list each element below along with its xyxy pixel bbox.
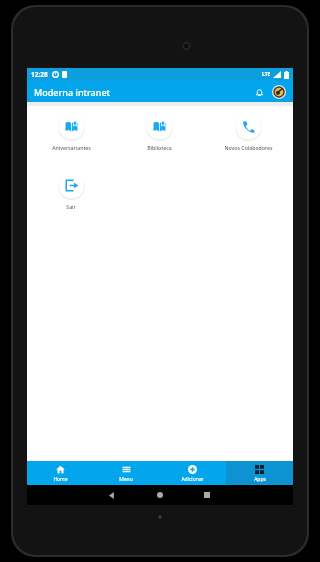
button[interactable]: Biblioteca — [115, 113, 204, 151]
staticText: Sair — [66, 203, 76, 210]
staticText: Adicionar — [181, 476, 204, 483]
button[interactable]: Profile — [270, 83, 287, 100]
staticText: Apps — [254, 476, 266, 483]
staticText: Biblioteca — [147, 144, 172, 151]
staticText: Moderna intranet — [34, 86, 110, 98]
staticText: Aniversariantes — [52, 144, 91, 151]
staticText: LTE — [262, 71, 271, 78]
button[interactable]: Home — [136, 485, 183, 505]
staticText: 12:28 — [31, 70, 48, 79]
button[interactable]: Sair — [27, 172, 115, 210]
staticText: Novos Colabodores — [224, 144, 273, 151]
button[interactable]: Novos Colabodores — [204, 113, 293, 151]
staticText: Home — [53, 476, 68, 483]
button[interactable]: Apps — [226, 461, 293, 485]
button[interactable]: Recents — [183, 485, 230, 505]
button[interactable]: Home — [27, 461, 93, 485]
button[interactable]: Notifications — [251, 84, 267, 100]
button[interactable]: Menu — [93, 461, 159, 485]
button[interactable]: Back — [89, 485, 136, 505]
button[interactable]: Adicionar — [159, 461, 226, 485]
staticText: Menu — [119, 476, 133, 483]
button[interactable]: Aniversariantes — [27, 113, 115, 151]
